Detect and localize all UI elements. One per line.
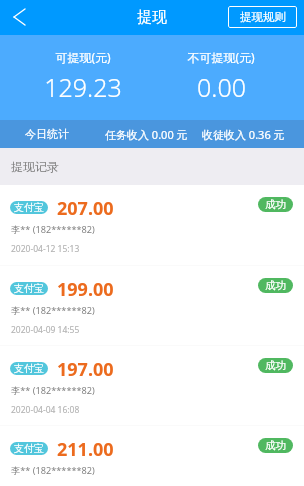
button[interactable]: 提现规则 xyxy=(228,6,297,28)
staticText: 211.00 xyxy=(57,437,114,462)
staticText: 支付宝 xyxy=(14,201,44,214)
staticText: 不可提现(元) xyxy=(187,49,255,65)
staticText: 2020-04-04 16:08 xyxy=(11,404,80,416)
staticText: 支付宝 xyxy=(14,282,44,295)
staticText: 2020-04-09 14:55 xyxy=(11,324,80,336)
staticText: 成功 xyxy=(265,359,286,372)
staticText: 今日统计 xyxy=(25,127,69,141)
staticText: 李** (182******82) xyxy=(11,304,95,317)
staticText: 199.00 xyxy=(57,277,114,302)
staticText: 成功 xyxy=(265,279,286,292)
staticText: 197.00 xyxy=(57,357,114,382)
staticText: 207.00 xyxy=(57,196,114,221)
staticText: 129.23 xyxy=(44,70,122,104)
staticText: 成功 xyxy=(265,198,286,211)
staticText: 可提现(元) xyxy=(55,49,111,65)
staticText: 支付宝 xyxy=(14,442,44,455)
button[interactable]: 支付宝 xyxy=(0,426,304,486)
button[interactable]: 支付宝 xyxy=(0,346,304,426)
staticText: 支付宝 xyxy=(14,362,44,375)
staticText: 李** (182******82) xyxy=(11,384,95,397)
button[interactable]: 支付宝 xyxy=(0,185,304,266)
staticText: 提现记录 xyxy=(11,159,59,174)
button[interactable]: 支付宝 xyxy=(0,266,304,346)
button[interactable]: Back xyxy=(0,0,38,35)
staticText: 任务收入 0.00 元 xyxy=(105,127,188,142)
staticText: 0.00 xyxy=(197,70,246,104)
staticText: 李** (182******82) xyxy=(11,223,95,236)
staticText: 提现规则 xyxy=(240,10,286,24)
staticText: 李** (182******82) xyxy=(11,464,95,477)
staticText: 收徒收入 0.36 元 xyxy=(202,127,285,142)
staticText: 2020-04-12 15:13 xyxy=(11,243,80,255)
staticText: 成功 xyxy=(265,439,286,452)
staticText: 提现 xyxy=(137,8,167,27)
